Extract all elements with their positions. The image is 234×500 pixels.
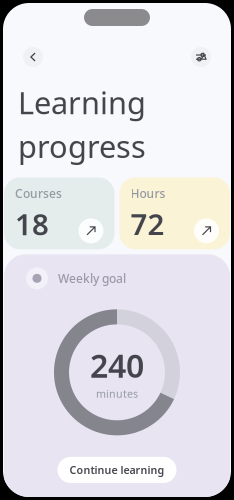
button[interactable]: Courses bbox=[4, 177, 114, 249]
staticText: 240 bbox=[90, 344, 144, 386]
staticText: Courses bbox=[15, 185, 62, 201]
staticText: progress bbox=[18, 126, 146, 166]
button[interactable]: Filter bbox=[191, 47, 211, 67]
button[interactable]: Continue learning bbox=[57, 457, 176, 483]
staticText: Hours bbox=[130, 185, 165, 201]
button[interactable]: Back bbox=[23, 47, 43, 67]
staticText: Continue learning bbox=[69, 463, 164, 477]
button[interactable]: Hours bbox=[119, 177, 230, 249]
staticText: 72 bbox=[130, 204, 164, 243]
staticText: 18 bbox=[15, 204, 49, 243]
staticText: minutes bbox=[96, 386, 138, 401]
staticText: Weekly goal bbox=[58, 270, 126, 286]
staticText: Learning bbox=[18, 82, 146, 123]
